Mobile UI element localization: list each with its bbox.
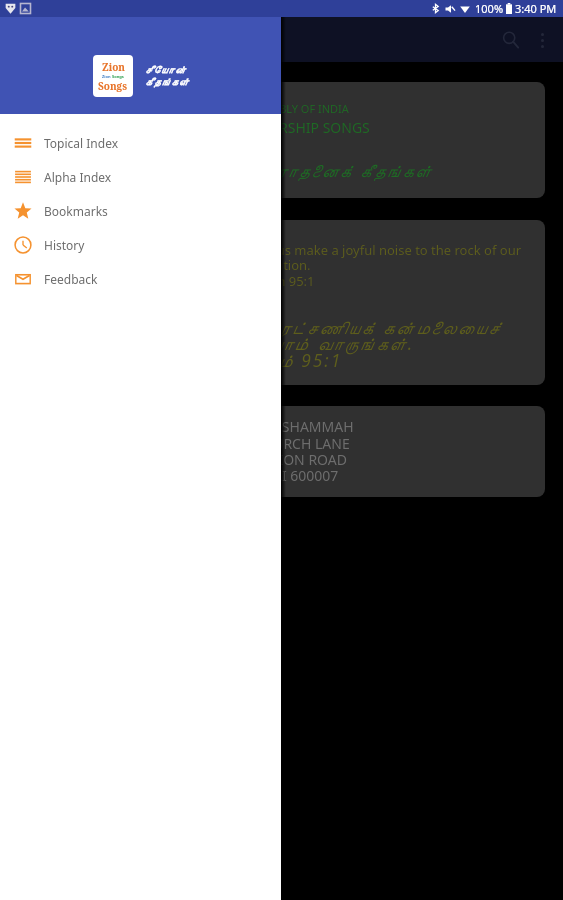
staticText: O come, let us sing unto the LORD: let u… — [20, 241, 543, 290]
button[interactable]: O come, let us sing unto the LORD: let u… — [18, 220, 545, 385]
staticText: Zion — [102, 74, 111, 79]
button[interactable]: Topical Index — [0, 126, 281, 160]
staticText: 3:40 PM — [515, 1, 557, 16]
button[interactable]: ZION ASSEMBLY OF INDIA — [18, 82, 545, 198]
staticText: சீயோன் சபை ஆராதனைக் கீதங்கள் — [131, 159, 433, 182]
staticText: சீயோன் கீதங்கள் — [145, 65, 190, 87]
staticText: Feedback — [44, 271, 98, 287]
button[interactable]: Search — [497, 26, 525, 54]
staticText: Songs — [98, 79, 128, 93]
staticText: ASSEMBLY SHAMMAH NO 3, CHURCH LANE OLD S… — [209, 417, 354, 485]
button[interactable]: Bookmarks — [0, 194, 281, 228]
button[interactable]: Alpha Index — [0, 160, 281, 194]
button[interactable]: Feedback — [0, 262, 281, 296]
staticText: CHURCH WORSHIP SONGS — [194, 118, 370, 137]
staticText: History — [44, 237, 85, 253]
staticText: Alpha Index — [44, 169, 112, 185]
staticText: Bookmarks — [44, 203, 108, 219]
staticText: 100% — [475, 1, 504, 16]
staticText: ZION ASSEMBLY OF INDIA — [214, 101, 349, 116]
staticText: வாருங்கள், நம்முடைய இரட்சணியக் கன்மலையைச… — [62, 315, 502, 372]
button[interactable]: ASSEMBLY SHAMMAH NO 3, CHURCH LANE OLD S… — [18, 406, 545, 497]
button[interactable]: History — [0, 228, 281, 262]
staticText: Zion — [102, 60, 125, 74]
staticText: Topical Index — [44, 135, 119, 151]
staticText: Songs — [111, 74, 124, 79]
